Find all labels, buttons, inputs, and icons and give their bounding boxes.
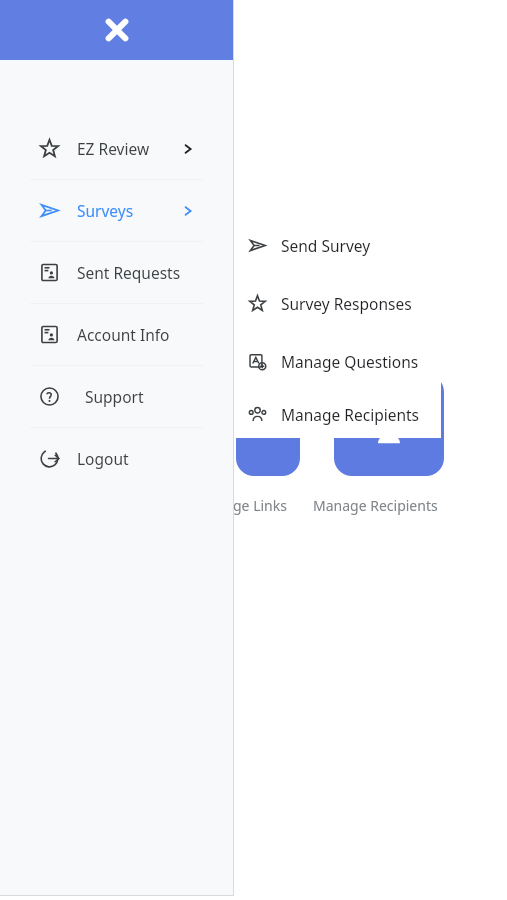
staticText: Manage Questions xyxy=(281,351,419,372)
staticText: Manage Recipients xyxy=(313,496,438,515)
button[interactable]: Manage Recipients xyxy=(234,390,441,438)
button[interactable]: Close menu xyxy=(0,0,234,60)
button[interactable]: Logout xyxy=(0,428,234,489)
button[interactable]: Survey Responses xyxy=(234,274,441,332)
button[interactable]: EZ Review xyxy=(0,118,234,179)
button[interactable]: Support xyxy=(0,366,234,427)
staticText: EZ Review xyxy=(77,138,150,159)
button[interactable]: Send Survey xyxy=(234,216,441,274)
button[interactable]: Manage Recipients xyxy=(334,374,444,476)
staticText: Account Info xyxy=(77,324,170,345)
staticText: Support xyxy=(85,386,144,407)
button[interactable]: Manage Questions xyxy=(234,332,441,390)
staticText: Survey Responses xyxy=(281,293,412,314)
staticText: Logout xyxy=(77,448,129,469)
button[interactable]: Manage Links xyxy=(236,374,300,476)
staticText: ge Links xyxy=(233,496,287,515)
button[interactable]: Account Info xyxy=(0,304,234,365)
staticText: Sent Requests xyxy=(77,262,181,283)
staticText: Send Survey xyxy=(281,235,371,256)
button[interactable]: Sent Requests xyxy=(0,242,234,303)
button[interactable]: Surveys xyxy=(0,180,234,241)
staticText: Surveys xyxy=(77,200,134,221)
staticText: Manage Recipients xyxy=(281,404,420,425)
